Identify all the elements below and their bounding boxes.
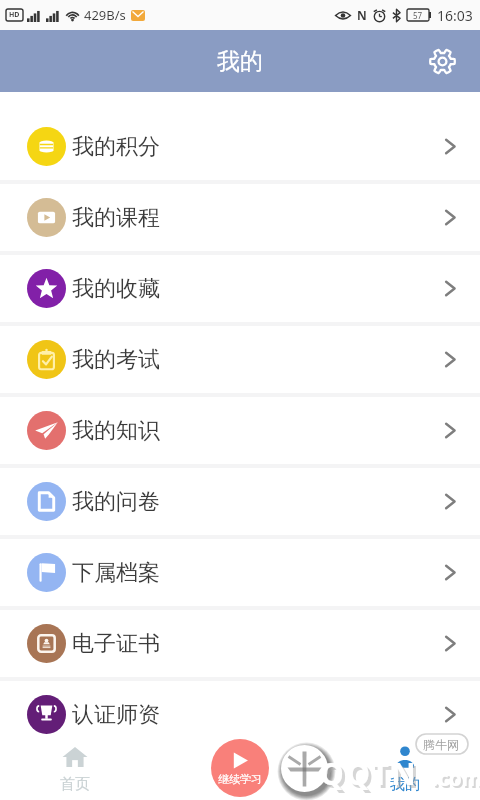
button[interactable]: Settings	[422, 41, 462, 81]
staticText: QQTN	[323, 756, 422, 797]
button[interactable]: 我的	[355, 738, 455, 800]
button[interactable]: 认证师资	[0, 681, 480, 752]
staticText: 下属档案	[72, 559, 160, 587]
button[interactable]: 下属档案	[0, 539, 480, 610]
staticText: 我的	[217, 47, 263, 76]
staticText: QQTN	[320, 753, 419, 794]
button[interactable]: 我的问卷	[0, 468, 480, 539]
staticText: 我的考试	[72, 346, 160, 374]
button[interactable]: 我的知识	[0, 397, 480, 468]
staticText: 16:03	[437, 6, 473, 25]
staticText: 我的课程	[72, 204, 160, 232]
staticText: .com	[432, 764, 480, 793]
button[interactable]: 我的收藏	[0, 255, 480, 326]
button[interactable]: 我的课程	[0, 184, 480, 255]
button[interactable]: 我的积分	[0, 113, 480, 184]
staticText: .com	[434, 766, 480, 795]
staticText: 我的知识	[72, 417, 160, 445]
button[interactable]: 电子证书	[0, 610, 480, 681]
staticText: HD	[9, 10, 20, 20]
staticText: 我的积分	[72, 133, 160, 161]
staticText: 57	[413, 10, 423, 21]
staticText: 我的收藏	[72, 275, 160, 303]
button[interactable]: 我的考试	[0, 326, 480, 397]
staticText: 继续学习	[218, 772, 262, 786]
staticText: 首页	[60, 775, 90, 794]
staticText: 我的问卷	[72, 488, 160, 516]
staticText: 腾牛网	[423, 737, 459, 752]
button[interactable]: 首页	[25, 738, 125, 800]
staticText: 电子证书	[72, 630, 160, 658]
staticText: 认证师资	[72, 701, 160, 729]
staticText: 我的	[390, 775, 420, 794]
button[interactable]: 继续学习	[211, 739, 269, 797]
staticText: N	[357, 7, 367, 23]
staticText: 429B/s	[84, 6, 126, 24]
